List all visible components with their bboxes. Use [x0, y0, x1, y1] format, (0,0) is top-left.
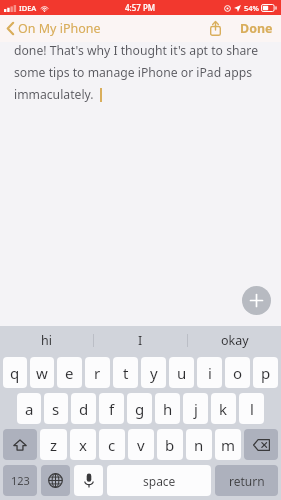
- button[interactable]: d: [71, 393, 96, 424]
- button[interactable]: On My iPhone: [5, 16, 103, 41]
- staticText: w: [36, 363, 48, 383]
- button[interactable]: u: [169, 357, 194, 388]
- button[interactable]: Dictate: [74, 465, 103, 496]
- staticText: q: [10, 363, 20, 383]
- staticText: c: [108, 435, 116, 455]
- staticText: z: [50, 435, 58, 455]
- staticText: 123: [11, 473, 30, 488]
- staticText: o: [233, 363, 243, 383]
- staticText: x: [79, 435, 87, 455]
- button[interactable]: a: [17, 393, 41, 424]
- button[interactable]: t: [113, 357, 138, 388]
- staticText: r: [94, 363, 101, 383]
- button[interactable]: p: [253, 357, 278, 388]
- button[interactable]: x: [70, 429, 96, 460]
- staticText: b: [165, 435, 175, 455]
- button[interactable]: space: [107, 465, 211, 496]
- staticText: h: [163, 399, 173, 419]
- staticText: some tips to manage iPhone or iPad apps: [14, 64, 253, 81]
- staticText: IDEA: [19, 3, 37, 13]
- button[interactable]: j: [183, 393, 208, 424]
- button[interactable]: l: [239, 393, 264, 424]
- staticText: hi: [41, 332, 52, 349]
- button[interactable]: g: [127, 393, 152, 424]
- button[interactable]: e: [57, 357, 82, 388]
- staticText: Done: [240, 20, 273, 37]
- button[interactable]: Done: [237, 17, 276, 40]
- button[interactable]: v: [128, 429, 154, 460]
- staticText: v: [137, 435, 145, 455]
- staticText: done! That's why I thought it's apt to s…: [14, 42, 259, 59]
- staticText: space: [143, 473, 176, 489]
- button[interactable]: Shift: [3, 429, 37, 460]
- staticText: k: [219, 399, 228, 419]
- button[interactable]: Share: [207, 18, 224, 39]
- button[interactable]: z: [40, 429, 67, 460]
- staticText: l: [250, 399, 254, 419]
- button[interactable]: w: [30, 357, 54, 388]
- button[interactable]: n: [186, 429, 212, 460]
- button[interactable]: b: [157, 429, 183, 460]
- staticText: I: [138, 332, 143, 349]
- button[interactable]: hi: [0, 326, 93, 355]
- staticText: m: [221, 435, 236, 455]
- staticText: 54%: [244, 3, 259, 13]
- staticText: n: [194, 435, 204, 455]
- staticText: immaculately.: [14, 86, 94, 103]
- staticText: return: [229, 473, 265, 489]
- staticText: f: [109, 399, 115, 419]
- button[interactable]: h: [155, 393, 180, 424]
- staticText: On My iPhone: [18, 20, 101, 37]
- staticText: u: [177, 363, 187, 383]
- button[interactable]: Backspace: [244, 429, 278, 460]
- button[interactable]: k: [211, 393, 236, 424]
- staticText: j: [194, 399, 198, 419]
- staticText: i: [208, 363, 212, 383]
- staticText: s: [52, 399, 60, 419]
- staticText: okay: [221, 332, 249, 349]
- button[interactable]: return: [215, 465, 278, 496]
- button[interactable]: c: [99, 429, 125, 460]
- staticText: a: [25, 399, 34, 419]
- button[interactable]: q: [3, 357, 27, 388]
- button[interactable]: r: [85, 357, 110, 388]
- button[interactable]: New note: [242, 286, 271, 315]
- staticText: e: [65, 363, 74, 383]
- button[interactable]: o: [225, 357, 250, 388]
- button[interactable]: i: [197, 357, 222, 388]
- button[interactable]: s: [44, 393, 68, 424]
- staticText: g: [135, 399, 145, 419]
- button[interactable]: 123: [3, 465, 37, 496]
- staticText: d: [79, 399, 89, 419]
- staticText: p: [261, 363, 271, 383]
- button[interactable]: y: [141, 357, 166, 388]
- staticText: 4:57 PM: [125, 2, 156, 13]
- button[interactable]: Switch keyboard: [41, 465, 70, 496]
- staticText: y: [150, 363, 158, 383]
- staticText: t: [123, 363, 129, 383]
- button[interactable]: I: [94, 326, 187, 355]
- button[interactable]: m: [215, 429, 241, 460]
- button[interactable]: okay: [188, 326, 281, 355]
- button[interactable]: f: [99, 393, 124, 424]
